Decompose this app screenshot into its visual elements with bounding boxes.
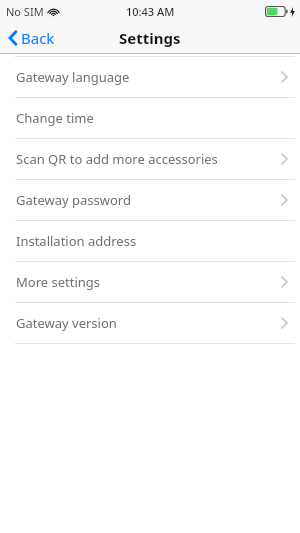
button[interactable]: Scan QR to add more accessories	[0, 139, 300, 179]
button[interactable]: Gateway version	[0, 303, 300, 343]
button[interactable]: Installation address	[0, 221, 300, 261]
staticText: Gateway version	[16, 314, 117, 332]
staticText: Gateway password	[16, 191, 131, 209]
staticText: 10:43 AM	[126, 4, 175, 19]
staticText: Change time	[16, 109, 94, 127]
staticText: Back	[21, 28, 55, 48]
button[interactable]: Gateway password	[0, 180, 300, 220]
button[interactable]: Gateway language	[0, 57, 300, 97]
staticText: Gateway language	[16, 68, 130, 86]
button[interactable]: More settings	[0, 262, 300, 302]
other: Open More settings	[281, 276, 288, 288]
staticText: Settings	[119, 28, 181, 48]
other: Open Gateway password	[281, 194, 288, 206]
other: Open Scan QR to add more accessories	[281, 153, 288, 165]
button[interactable]: Change time	[0, 98, 300, 138]
other: Open Gateway language	[281, 71, 288, 83]
staticText: Scan QR to add more accessories	[16, 150, 218, 168]
staticText: More settings	[16, 273, 101, 291]
staticText: No SIM	[6, 4, 44, 19]
other: Open Gateway version	[281, 317, 288, 329]
staticText: Installation address	[16, 232, 137, 250]
button[interactable]: Back	[0, 23, 67, 53]
